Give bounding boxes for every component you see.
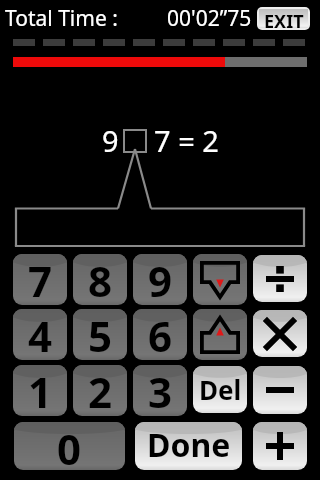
staticText: 4	[28, 309, 53, 358]
button[interactable]: Multiply	[253, 310, 307, 357]
button[interactable]: 7	[13, 254, 67, 305]
button[interactable]: 1	[13, 365, 67, 416]
button[interactable]: Move cursor up	[193, 309, 247, 360]
staticText: 7 = 2	[154, 121, 219, 160]
staticText: 7	[28, 254, 53, 303]
staticText: Del	[199, 372, 242, 407]
staticText: 5	[88, 309, 113, 358]
button[interactable]: EXIT	[259, 9, 308, 28]
button[interactable]: Minus	[253, 366, 307, 414]
staticText: 0	[57, 422, 82, 468]
staticText: 00'02”75	[167, 4, 252, 33]
button[interactable]: Divide	[253, 255, 307, 302]
button[interactable]: 9	[133, 254, 187, 305]
staticText: 8	[88, 254, 113, 303]
button[interactable]: Del	[193, 366, 247, 413]
staticText: EXIT	[264, 9, 304, 28]
staticText: 6	[148, 309, 173, 358]
button[interactable]	[124, 130, 146, 152]
staticText: 9	[102, 121, 119, 160]
button[interactable]: Done	[135, 422, 242, 470]
staticText: 3	[148, 365, 173, 414]
staticText: 2	[88, 365, 113, 414]
button[interactable]: 0	[14, 422, 125, 470]
button[interactable]: 4	[13, 309, 67, 360]
button[interactable]: 3	[133, 365, 187, 416]
button[interactable]: 5	[73, 309, 127, 360]
button[interactable]: 6	[133, 309, 187, 360]
staticText: 9	[148, 254, 173, 303]
staticText: 1	[28, 365, 53, 414]
button[interactable]: Plus	[253, 422, 307, 470]
button[interactable]: 2	[73, 365, 127, 416]
staticText: Done	[147, 423, 231, 467]
button[interactable]: Move cursor down	[193, 254, 247, 305]
button[interactable]: 8	[73, 254, 127, 305]
staticText: Total Time :	[5, 4, 118, 33]
